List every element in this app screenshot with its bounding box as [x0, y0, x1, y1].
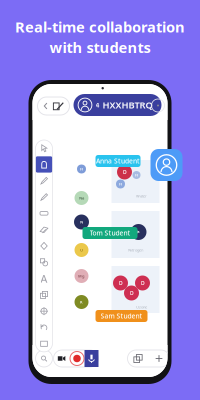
- staticText: 4: [95, 101, 99, 109]
- button[interactable]: Video: [53, 350, 69, 367]
- button[interactable]: N: [74, 214, 89, 229]
- staticText: O: [118, 279, 122, 287]
- button[interactable]: Duplicate: [127, 350, 148, 367]
- staticText: H: [80, 166, 83, 172]
- staticText: O: [129, 289, 133, 297]
- button[interactable]: Mg: [74, 269, 88, 283]
- button[interactable]: Tool 7: [35, 238, 52, 254]
- button[interactable]: K: [74, 295, 88, 309]
- button[interactable]: Tool 4: [35, 189, 52, 205]
- button[interactable]: O: [74, 243, 88, 257]
- button[interactable]: Tool 9: [35, 270, 52, 287]
- staticText: Mg: [78, 273, 85, 279]
- staticText: O: [122, 168, 126, 176]
- button[interactable]: Add: [148, 350, 169, 367]
- button[interactable]: Tool 8: [35, 254, 52, 270]
- staticText: H: [119, 181, 122, 187]
- button[interactable]: Tool 13: [35, 336, 52, 352]
- button[interactable]: More: [151, 99, 164, 112]
- staticText: Sam Student: [100, 312, 142, 320]
- button[interactable]: Record: [69, 350, 84, 367]
- button[interactable]: Tool 3: [35, 173, 52, 189]
- staticText: O: [80, 247, 83, 253]
- button[interactable]: Back: [37, 97, 69, 115]
- staticText: with students: [49, 37, 150, 57]
- staticText: K: [80, 299, 83, 305]
- button[interactable]: Tool 11: [35, 303, 52, 319]
- staticText: HXXHBTRQ: [102, 99, 152, 111]
- button[interactable]: H: [77, 164, 86, 173]
- button[interactable]: Tool 2: [35, 156, 52, 173]
- staticText: Ozone: [136, 304, 147, 310]
- staticText: Water: [136, 193, 147, 199]
- button[interactable]: Tool 12: [35, 319, 52, 336]
- button[interactable]: Tool 10: [35, 287, 52, 303]
- staticText: Tom Student: [89, 229, 130, 237]
- staticText: N: [80, 219, 83, 225]
- staticText: H: [135, 172, 138, 178]
- button[interactable]: Tool 1: [35, 140, 52, 156]
- button[interactable]: Session code HXXHBTRQ: [73, 94, 161, 116]
- staticText: Real-time collaboration: [15, 17, 185, 36]
- button[interactable]: Tool 6: [35, 221, 52, 238]
- button[interactable]: Microphone: [84, 350, 98, 367]
- staticText: Nitrogen: [128, 247, 143, 253]
- staticText: O: [140, 279, 144, 287]
- button[interactable]: Tool 5: [35, 205, 52, 221]
- staticText: Anna Student: [96, 157, 140, 165]
- button[interactable]: Na: [74, 191, 88, 205]
- staticText: Na: [79, 195, 84, 201]
- staticText: A: [40, 271, 47, 286]
- button[interactable]: Zoom: [35, 350, 52, 367]
